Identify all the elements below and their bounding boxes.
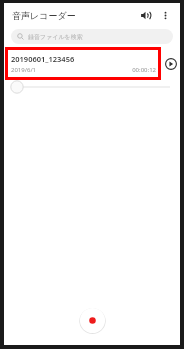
staticText: 20190601_123456	[11, 54, 75, 64]
staticText: 音声レコーダー	[12, 10, 76, 21]
button[interactable]: 録音ファイルを検索	[11, 29, 173, 44]
staticText: 録音ファイルを検索	[28, 33, 83, 41]
button[interactable]: Play	[161, 47, 180, 80]
button[interactable]: Speaker	[136, 6, 154, 24]
button[interactable]: More options	[156, 6, 174, 24]
button[interactable]	[4, 80, 180, 94]
button[interactable]: 20190601_123456	[5, 47, 161, 80]
staticText: 00:00:12	[37, 66, 156, 74]
staticText: 2019/6/1	[11, 66, 37, 74]
button[interactable]: Record	[79, 307, 106, 334]
